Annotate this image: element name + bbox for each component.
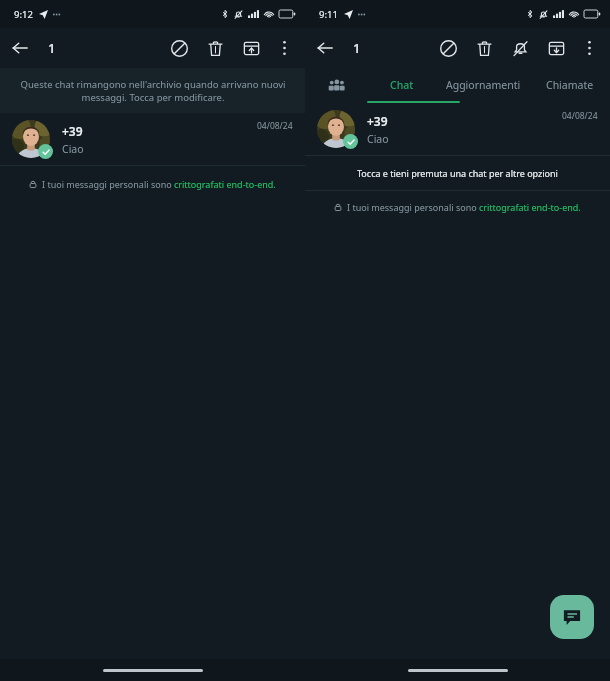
staticText: 9:12 xyxy=(14,8,33,21)
button[interactable]: I tuoi messaggi personali sono crittogra… xyxy=(0,178,305,190)
button[interactable]: Nuova chat xyxy=(550,595,594,639)
button[interactable]: Altre opzioni xyxy=(269,28,299,68)
button[interactable]: Aggiornamenti xyxy=(436,68,530,101)
staticText: I tuoi messaggi personali sono crittogra… xyxy=(42,178,276,190)
staticText: Chat xyxy=(390,78,414,92)
staticText: 9:11 xyxy=(319,8,338,21)
button[interactable]: Indietro xyxy=(305,28,345,68)
staticText: Queste chat rimangono nell'archivio quan… xyxy=(20,78,286,104)
staticText: Chiamate xyxy=(546,78,594,92)
staticText: +39 xyxy=(62,123,83,139)
button[interactable]: Community xyxy=(305,68,367,101)
button[interactable]: I tuoi messaggi personali sono crittogra… xyxy=(305,201,610,213)
button[interactable]: Blocca xyxy=(161,28,197,68)
staticText: 04/08/24 xyxy=(562,110,598,122)
button[interactable]: Indietro xyxy=(0,28,40,68)
staticText: 1 xyxy=(48,39,56,57)
button[interactable]: Elimina xyxy=(197,28,233,68)
button[interactable]: Altre opzioni xyxy=(574,28,604,68)
staticText: +39 xyxy=(367,113,388,129)
staticText: 1 xyxy=(353,39,361,57)
button[interactable]: +39 xyxy=(0,113,305,165)
button[interactable]: Elimina xyxy=(466,28,502,68)
button[interactable]: Chat xyxy=(367,68,436,101)
button[interactable]: Silenzia xyxy=(502,28,538,68)
staticText: Ciao xyxy=(367,132,389,146)
staticText: 04/08/24 xyxy=(257,120,293,132)
button[interactable]: +39 xyxy=(305,103,610,155)
staticText: Aggiornamenti xyxy=(446,78,521,92)
staticText: Ciao xyxy=(62,142,84,156)
staticText: Tocca e tieni premuta una chat per altre… xyxy=(357,167,558,179)
button[interactable]: Blocca xyxy=(430,28,466,68)
staticText: I tuoi messaggi personali sono crittogra… xyxy=(347,201,581,213)
button[interactable]: Queste chat rimangono nell'archivio quan… xyxy=(0,68,305,113)
button[interactable]: Chiamate xyxy=(530,68,610,101)
button[interactable]: Archivia xyxy=(538,28,574,68)
button[interactable]: Rimuovi dall'archivio xyxy=(233,28,269,68)
